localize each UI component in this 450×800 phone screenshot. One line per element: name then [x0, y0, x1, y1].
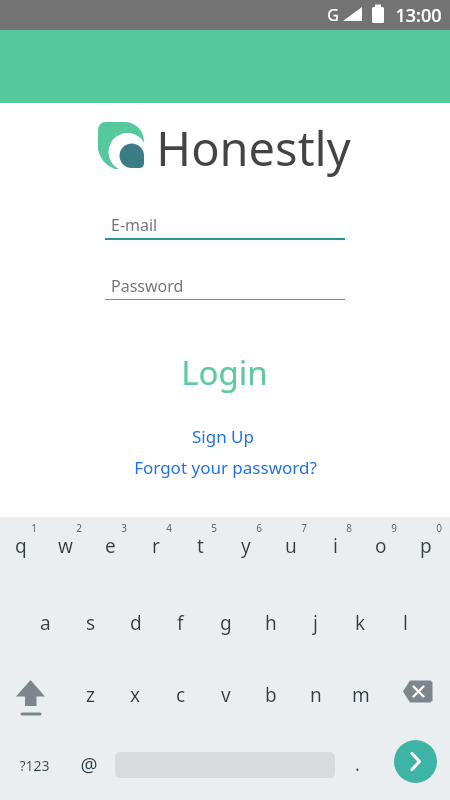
button[interactable]: m — [338, 673, 383, 717]
button[interactable]: n — [293, 673, 338, 717]
staticText: ?123 — [19, 756, 50, 775]
button[interactable]: h — [248, 601, 293, 645]
staticText: 0 — [436, 521, 442, 535]
button[interactable]: z — [68, 673, 113, 717]
staticText: c — [176, 682, 186, 708]
button[interactable]: o — [358, 517, 403, 575]
button[interactable]: j — [293, 601, 338, 645]
staticText: 5 — [211, 521, 217, 535]
staticText: q — [15, 533, 27, 559]
staticText: Honestly — [156, 116, 351, 180]
button[interactable]: . — [337, 742, 377, 786]
staticText: v — [221, 682, 231, 708]
staticText: i — [333, 533, 338, 559]
staticText: t — [197, 533, 204, 559]
staticText: 9 — [391, 521, 397, 535]
staticText: z — [86, 682, 95, 708]
staticText: 4 — [166, 521, 172, 535]
staticText: 2 — [76, 521, 82, 535]
staticText: j — [313, 610, 318, 636]
button[interactable]: s — [68, 601, 113, 645]
staticText: w — [58, 533, 73, 559]
staticText: e — [105, 533, 116, 559]
button[interactable]: ?123 — [4, 743, 64, 787]
staticText: y — [241, 533, 251, 559]
staticText: m — [352, 682, 370, 708]
staticText: l — [403, 610, 408, 636]
staticText: 8 — [346, 521, 352, 535]
button[interactable] — [390, 670, 450, 714]
button[interactable]: @ — [67, 743, 111, 787]
staticText: g — [220, 610, 232, 636]
staticText: 1 — [31, 521, 37, 535]
button[interactable]: v — [203, 673, 248, 717]
button[interactable]: t — [178, 517, 223, 575]
staticText: d — [130, 610, 142, 636]
staticText: x — [130, 682, 141, 708]
button[interactable]: u — [268, 517, 313, 575]
button[interactable] — [394, 740, 437, 783]
staticText: G — [327, 4, 339, 26]
button[interactable]: q — [0, 517, 43, 575]
staticText: E-mail — [111, 214, 158, 236]
staticText: b — [265, 682, 277, 708]
button[interactable]: p — [403, 517, 448, 575]
staticText: n — [310, 682, 322, 708]
staticText: Password — [111, 275, 184, 297]
button[interactable]: w — [43, 517, 88, 575]
button[interactable]: b — [248, 673, 293, 717]
staticText: p — [420, 533, 432, 559]
staticText: . — [355, 752, 360, 777]
staticText: @ — [80, 752, 98, 778]
staticText: Login — [181, 350, 268, 395]
staticText: 13:00 — [395, 3, 442, 28]
button[interactable]: r — [133, 517, 178, 575]
button[interactable]: e — [88, 517, 133, 575]
button[interactable]: i — [313, 517, 358, 575]
staticText: o — [375, 533, 387, 559]
button[interactable]: Login — [124, 344, 324, 400]
button[interactable]: f — [158, 601, 203, 645]
staticText: f — [177, 610, 184, 636]
button[interactable]: c — [158, 673, 203, 717]
staticText: s — [86, 610, 96, 636]
button[interactable]: a — [23, 601, 68, 645]
button[interactable]: E-mail — [105, 205, 345, 241]
staticText: a — [40, 610, 51, 636]
staticText: u — [285, 533, 297, 559]
button[interactable]: g — [203, 601, 248, 645]
button[interactable]: d — [113, 601, 158, 645]
staticText: 3 — [121, 521, 127, 535]
button[interactable]: Forgot your password? — [105, 449, 345, 485]
button[interactable]: k — [338, 601, 383, 645]
button[interactable] — [0, 668, 62, 720]
button[interactable]: Sign Up — [153, 418, 293, 454]
button[interactable]: Password — [105, 266, 345, 300]
staticText: k — [355, 610, 366, 636]
staticText: 6 — [256, 521, 262, 535]
staticText: 7 — [301, 521, 307, 535]
staticText: Sign Up — [192, 425, 254, 448]
button[interactable]: y — [223, 517, 268, 575]
button[interactable]: l — [383, 601, 428, 645]
staticText: r — [152, 533, 160, 559]
button[interactable]: x — [113, 673, 158, 717]
staticText: h — [265, 610, 277, 636]
staticText: Forgot your password? — [134, 456, 317, 479]
